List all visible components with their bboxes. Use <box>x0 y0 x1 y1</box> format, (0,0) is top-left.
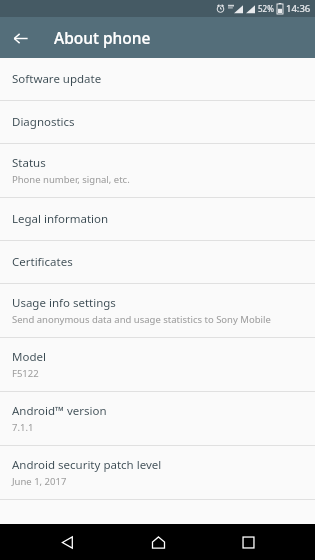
button[interactable]: Home <box>135 524 181 560</box>
button[interactable]: Diagnostics <box>0 101 315 143</box>
staticText: 14:36 <box>286 2 311 15</box>
staticText: Diagnostics <box>12 114 75 130</box>
staticText: Phone number, signal, etc. <box>12 173 130 186</box>
staticText: Android security patch level <box>12 457 162 473</box>
staticText: F5122 <box>12 367 39 380</box>
staticText: Software update <box>12 71 102 87</box>
button[interactable]: Back <box>44 524 90 560</box>
staticText: 52% <box>258 3 274 14</box>
staticText: Model <box>12 349 46 365</box>
staticText: Android™ version <box>12 403 107 419</box>
staticText: About phone <box>54 27 151 48</box>
button[interactable]: Certificates <box>0 241 315 283</box>
staticText: 7.1.1 <box>12 421 34 434</box>
button[interactable]: Recent apps <box>225 524 271 560</box>
button[interactable]: Android security patch level <box>0 446 315 499</box>
staticText: June 1, 2017 <box>12 475 67 488</box>
button[interactable]: Model <box>0 338 315 391</box>
button[interactable]: Android™ version <box>0 392 315 445</box>
staticText: Legal information <box>12 211 109 227</box>
button[interactable]: Software update <box>0 58 315 100</box>
button[interactable]: Legal information <box>0 198 315 240</box>
button[interactable]: Back <box>0 18 40 58</box>
button[interactable]: Status <box>0 144 315 197</box>
staticText: Certificates <box>12 254 73 270</box>
staticText: Send anonymous data and usage statistics… <box>12 313 271 326</box>
button[interactable]: Usage info settings <box>0 284 315 337</box>
staticText: Status <box>12 155 46 171</box>
staticText: Usage info settings <box>12 295 116 311</box>
